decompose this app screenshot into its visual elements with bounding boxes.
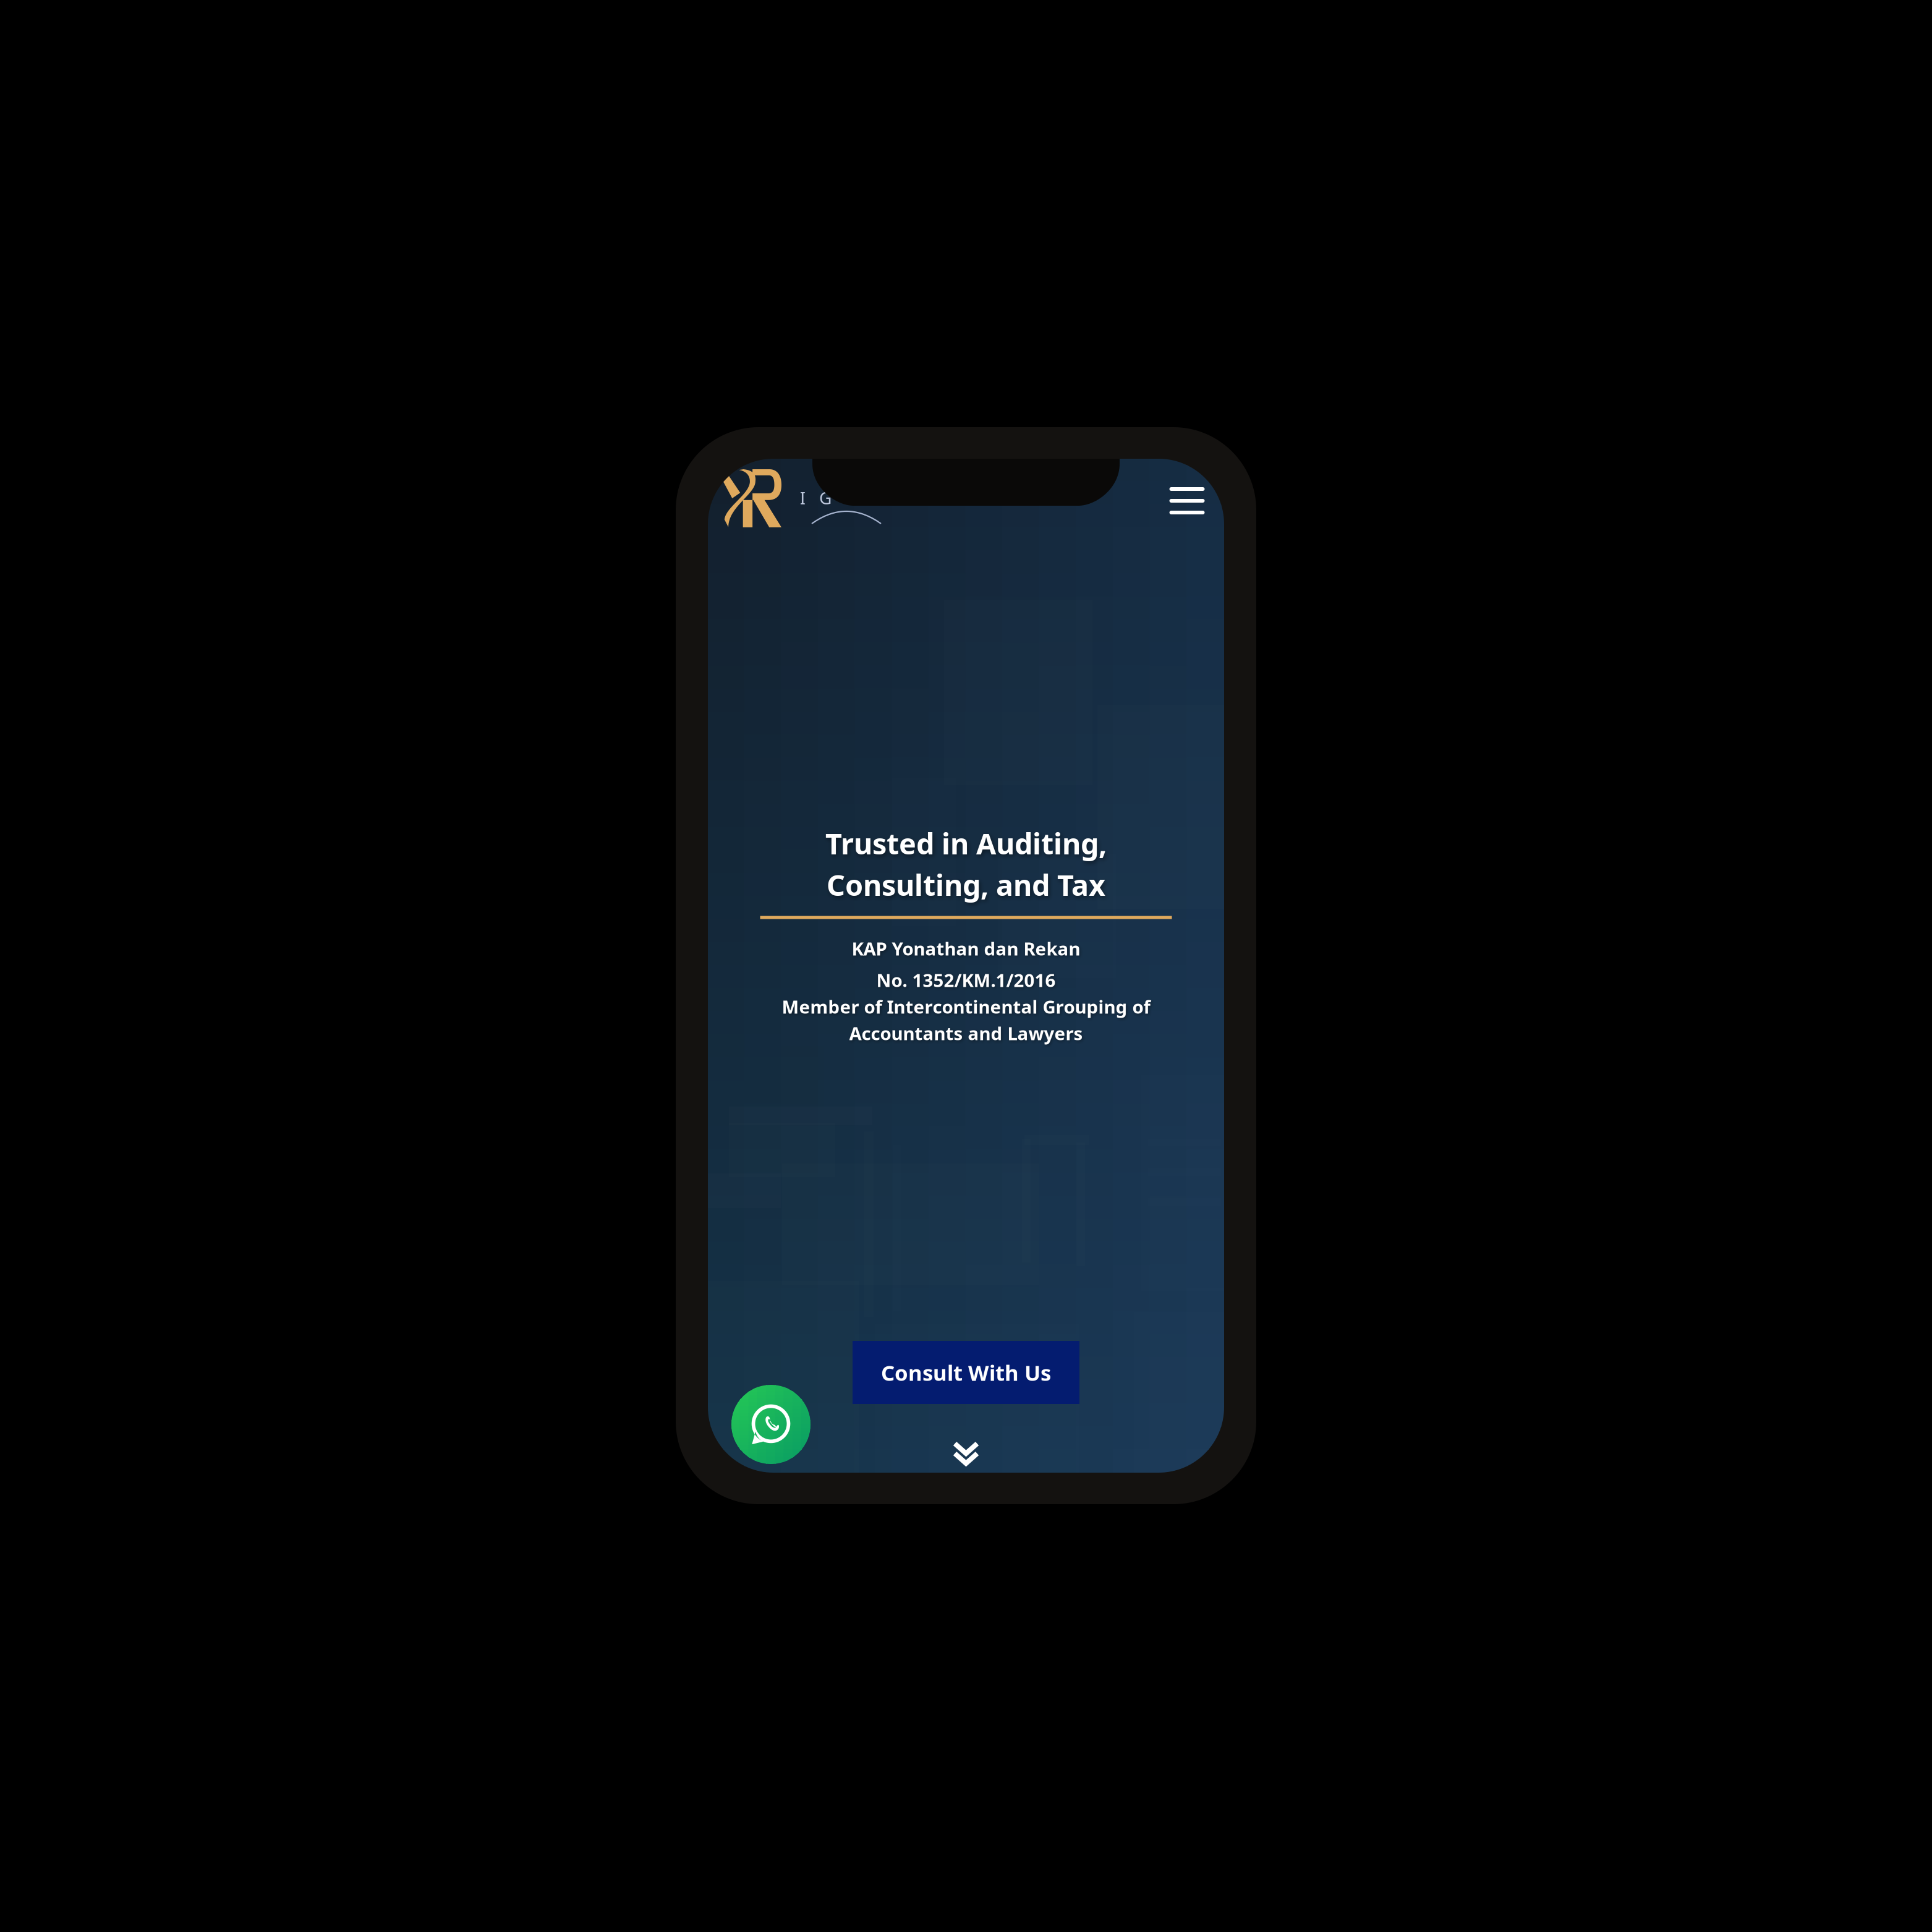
button[interactable]: Consult With Us	[853, 1341, 1079, 1404]
staticText: No. 1352/KM.1/2016	[876, 968, 1056, 992]
button[interactable]: Chat on WhatsApp	[731, 1385, 811, 1464]
button[interactable]: Scroll down	[949, 1436, 983, 1471]
staticText: Consult With Us	[881, 1358, 1051, 1387]
button[interactable]: KAP Yonathan dan Rekan — home	[722, 469, 781, 527]
button[interactable]: Menu	[1157, 472, 1217, 529]
staticText: Member of Intercontinental Grouping of	[782, 994, 1150, 1019]
staticText: I	[800, 486, 805, 509]
staticText: KAP Yonathan dan Rekan	[852, 936, 1080, 960]
staticText: Trusted in Auditing,	[825, 824, 1107, 862]
staticText: Consulting, and Tax	[827, 866, 1105, 904]
staticText: G	[819, 486, 832, 509]
staticText: Accountants and Lawyers	[849, 1021, 1083, 1045]
